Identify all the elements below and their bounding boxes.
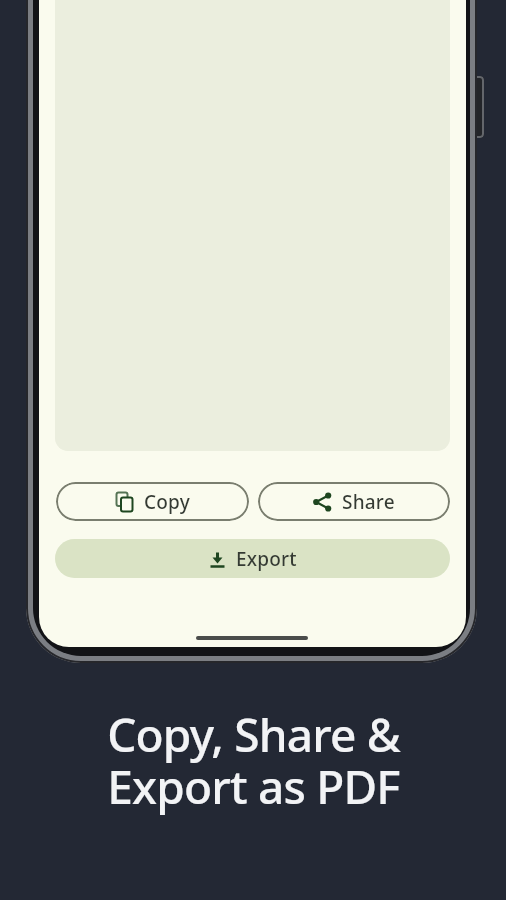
staticText: Copy, Share & Export as PDF — [107, 703, 400, 817]
button[interactable]: Share — [258, 482, 450, 521]
button[interactable]: Export — [55, 539, 450, 578]
button[interactable]: Copy — [56, 482, 249, 521]
staticText: Export — [236, 546, 297, 572]
staticText: Share — [342, 489, 395, 515]
staticText: Copy — [144, 489, 190, 515]
